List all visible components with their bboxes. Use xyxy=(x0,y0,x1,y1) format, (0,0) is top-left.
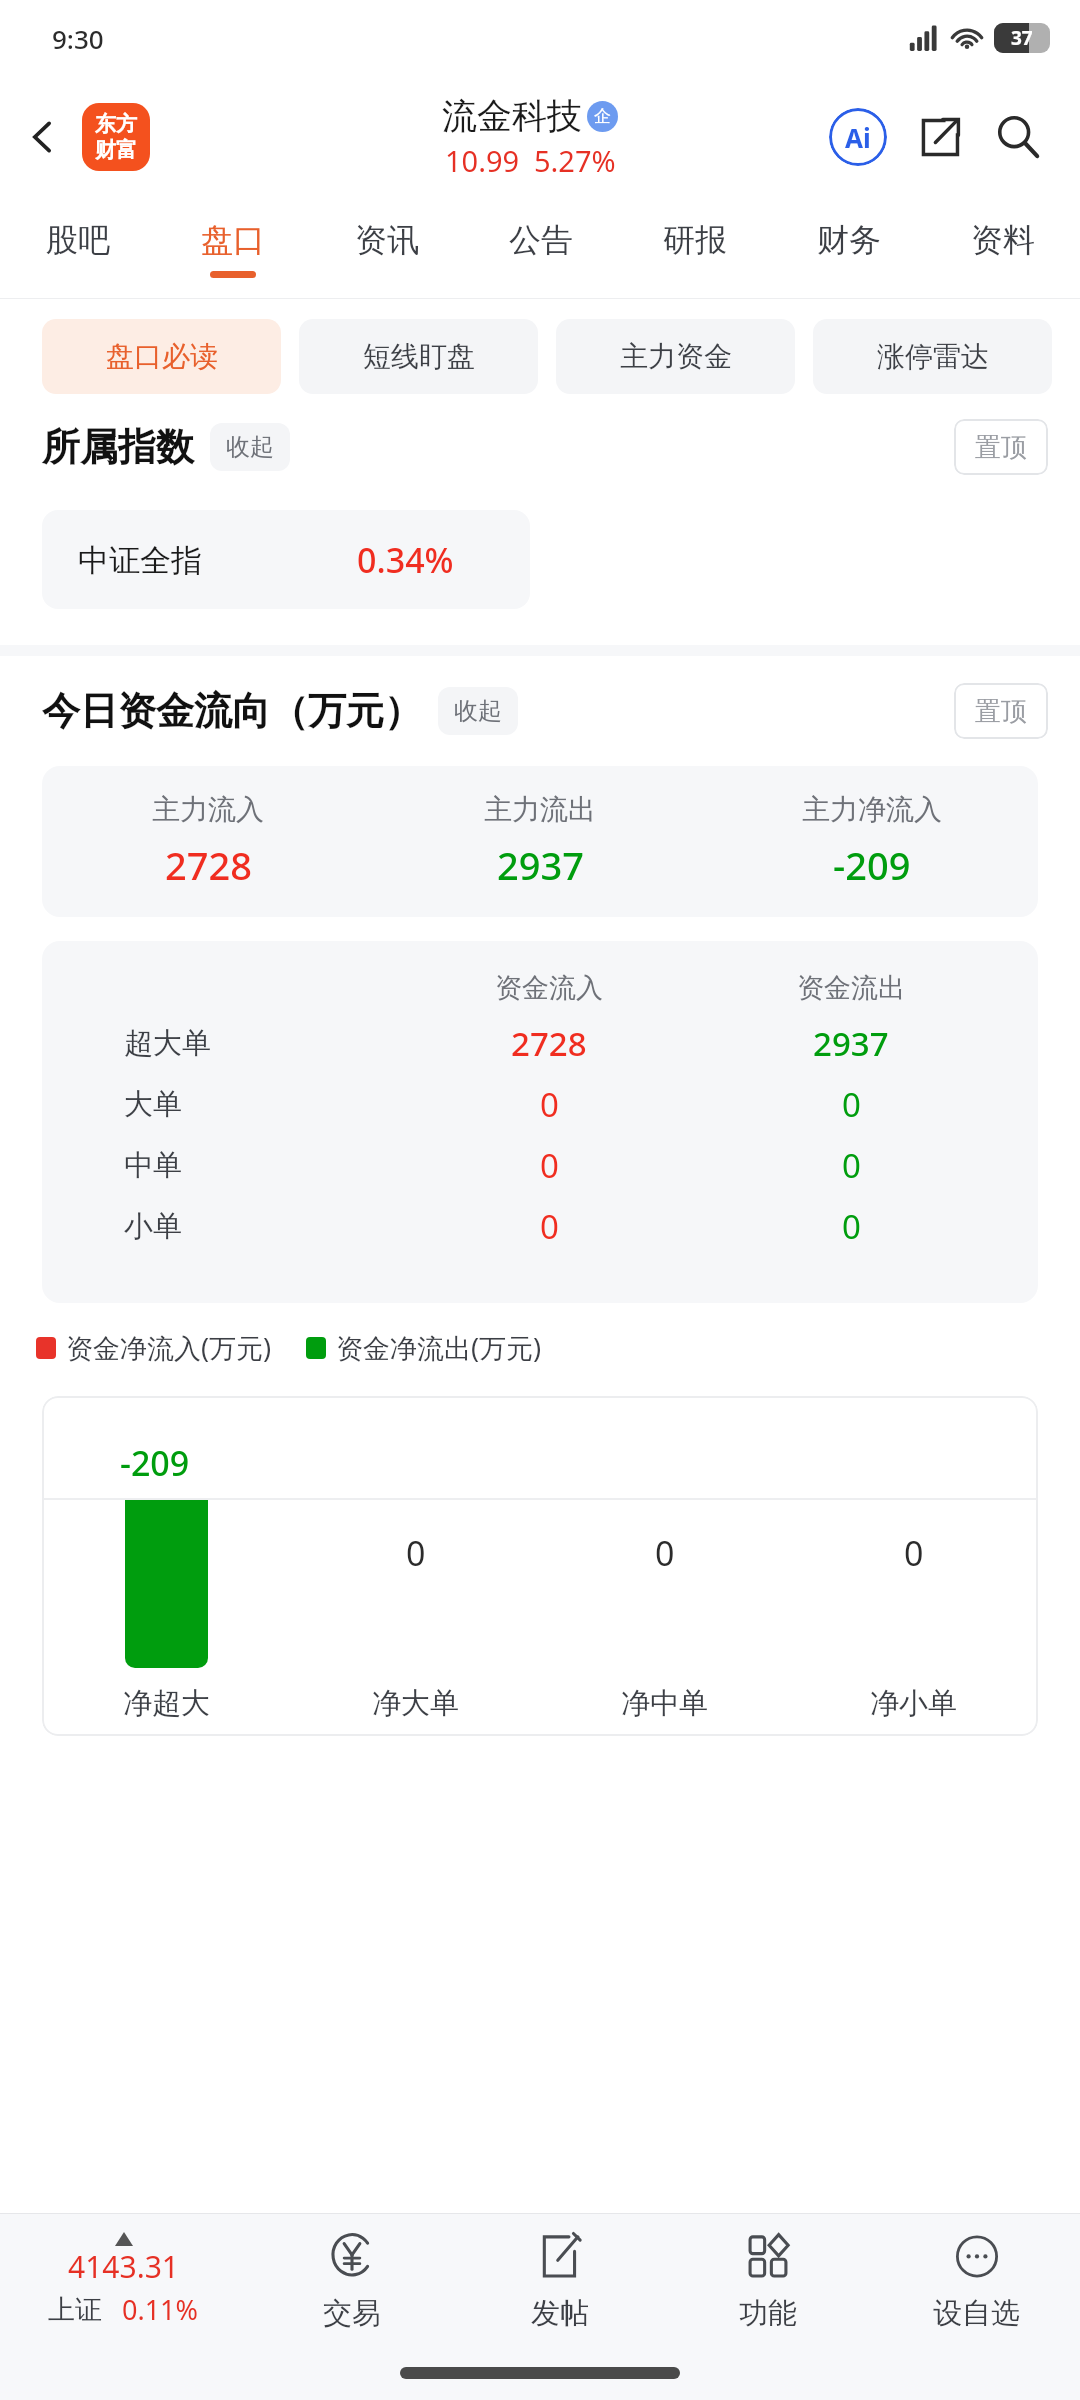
staticText: 资金净流出(万元) xyxy=(336,1329,542,1366)
staticText: 东方 xyxy=(95,111,137,137)
button[interactable]: 主力资金 xyxy=(556,319,795,394)
button[interactable]: 公告 xyxy=(464,198,618,298)
button[interactable]: AI assistant xyxy=(822,101,894,173)
button[interactable]: 研报 xyxy=(618,198,772,298)
staticText: 设自选 xyxy=(933,2295,1020,2332)
staticText: 盘口必读 xyxy=(106,339,218,374)
staticText: 0 xyxy=(540,1204,559,1249)
staticText: 4143.31 xyxy=(68,2246,179,2287)
staticText: 盘口 xyxy=(201,220,265,260)
button[interactable]: 盘口 xyxy=(155,198,310,298)
staticText: 0 xyxy=(842,1204,861,1249)
staticText: 主力净流入 xyxy=(802,792,942,827)
staticText: 资金流出 xyxy=(797,971,905,1005)
button[interactable]: 收起 xyxy=(454,687,502,735)
staticText: 小单 xyxy=(124,1208,182,1245)
staticText: 发帖 xyxy=(531,2295,589,2332)
staticText: 收起 xyxy=(454,696,502,726)
staticText: 主力流入 xyxy=(152,792,264,827)
staticText: 收起 xyxy=(226,432,274,462)
button[interactable]: 发帖 xyxy=(456,2214,664,2346)
staticText: Ai xyxy=(845,120,871,155)
staticText: 0 xyxy=(904,1530,924,1576)
button[interactable]: 交易 xyxy=(247,2214,456,2346)
staticText: 主力资金 xyxy=(620,339,732,374)
button[interactable]: East Money home xyxy=(82,103,150,171)
staticText: 10.99 xyxy=(445,141,520,180)
staticText: 0 xyxy=(540,1082,559,1127)
button[interactable]: 财务 xyxy=(772,198,926,298)
button[interactable]: 涨停雷达 xyxy=(813,319,1052,394)
staticText: 公告 xyxy=(509,220,573,260)
staticText: 9:30 xyxy=(52,21,104,56)
button[interactable]: 盘口必读 xyxy=(42,319,281,394)
button[interactable]: 置顶 xyxy=(954,683,1048,739)
staticText: 0.11% xyxy=(122,2291,199,2328)
button[interactable]: Back xyxy=(8,102,78,172)
button[interactable]: 股吧 xyxy=(0,198,155,298)
staticText: 资料 xyxy=(971,220,1035,260)
button[interactable]: 主力流入 xyxy=(42,792,374,891)
button[interactable]: 主力净流入 xyxy=(706,792,1038,891)
staticText: 今日资金流向（万元） xyxy=(42,687,422,735)
staticText: 资金净流入(万元) xyxy=(66,1329,272,1366)
button[interactable]: Search xyxy=(982,101,1054,173)
staticText: 净小单 xyxy=(870,1685,957,1722)
staticText: 0 xyxy=(842,1082,861,1127)
button[interactable]: 置顶 xyxy=(954,419,1048,475)
staticText: 流金科技 xyxy=(442,94,582,138)
staticText: 0 xyxy=(540,1143,559,1188)
staticText: 2937 xyxy=(813,1021,889,1066)
staticText: 0 xyxy=(655,1530,675,1576)
staticText: 研报 xyxy=(663,220,727,260)
staticText: 资金流入 xyxy=(495,971,603,1005)
staticText: 中证全指 xyxy=(78,541,202,580)
button[interactable]: 4143.31 xyxy=(0,2214,247,2346)
button[interactable]: Share xyxy=(904,101,976,173)
button[interactable]: 设自选 xyxy=(872,2214,1080,2346)
button[interactable]: 功能 xyxy=(664,2214,872,2346)
staticText: 企 xyxy=(594,106,611,127)
staticText: 0 xyxy=(842,1143,861,1188)
staticText: 资讯 xyxy=(355,220,419,260)
staticText: 2728 xyxy=(165,839,252,891)
staticText: 财富 xyxy=(95,137,137,163)
button[interactable]: 短线盯盘 xyxy=(299,319,538,394)
button[interactable]: 资料 xyxy=(926,198,1080,298)
staticText: 净超大 xyxy=(123,1685,210,1722)
staticText: 净大单 xyxy=(372,1685,459,1722)
staticText: 置顶 xyxy=(975,695,1027,728)
staticText: 功能 xyxy=(739,2295,797,2332)
staticText: -209 xyxy=(833,839,911,891)
staticText: 财务 xyxy=(817,220,881,260)
staticText: 涨停雷达 xyxy=(877,339,989,374)
staticText: 2728 xyxy=(511,1021,587,1066)
staticText: 超大单 xyxy=(124,1025,211,1062)
staticText: 中单 xyxy=(124,1147,182,1184)
button[interactable]: 收起 xyxy=(226,423,274,471)
staticText: 5.27% xyxy=(534,141,616,180)
staticText: 0.34% xyxy=(357,537,454,583)
staticText: 净中单 xyxy=(621,1685,708,1722)
button[interactable]: 中证全指 xyxy=(42,510,530,609)
staticText: 大单 xyxy=(124,1086,182,1123)
staticText: 2937 xyxy=(497,839,584,891)
staticText: 股吧 xyxy=(46,220,110,260)
staticText: 交易 xyxy=(323,2295,381,2332)
button[interactable]: 资讯 xyxy=(310,198,464,298)
staticText: 主力流出 xyxy=(484,792,596,827)
staticText: -209 xyxy=(120,1440,190,1486)
staticText: 0 xyxy=(406,1530,426,1576)
button[interactable]: 主力流出 xyxy=(374,792,706,891)
staticText: 短线盯盘 xyxy=(363,339,475,374)
staticText: 置顶 xyxy=(975,431,1027,464)
staticText: 上证 xyxy=(48,2293,102,2327)
staticText: 37 xyxy=(1011,25,1033,51)
staticText: 所属指数 xyxy=(42,423,194,471)
